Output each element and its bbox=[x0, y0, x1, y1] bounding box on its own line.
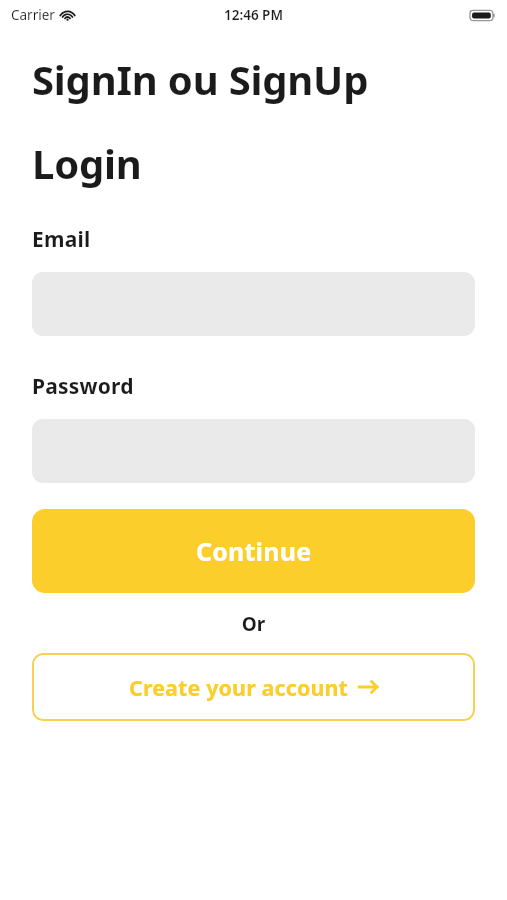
staticText: Email bbox=[32, 225, 91, 254]
staticText: Carrier bbox=[11, 6, 55, 24]
staticText: Create your account bbox=[129, 673, 349, 702]
staticText: Password bbox=[32, 372, 134, 401]
staticText: Login bbox=[32, 136, 142, 190]
staticText: SignIn ou SignUp bbox=[32, 52, 369, 106]
staticText: Or bbox=[32, 611, 475, 637]
button[interactable]: Create your account bbox=[32, 653, 475, 721]
staticText: Continue bbox=[196, 534, 312, 568]
staticText: 12:46 PM bbox=[224, 6, 283, 24]
button[interactable]: Continue bbox=[32, 509, 475, 593]
